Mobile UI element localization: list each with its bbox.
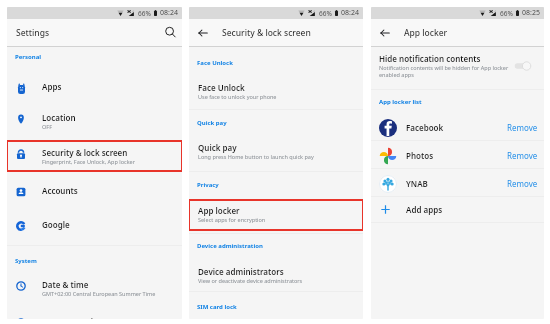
staticText: OFF [42,123,53,130]
button[interactable]: Search [164,26,177,39]
staticText: Google [42,219,70,230]
button[interactable]: Remove [501,118,544,137]
staticText: 08:24 [341,8,359,18]
staticText: Select apps for encryption [198,216,266,223]
button[interactable]: Back [197,27,209,39]
staticText: Accounts [42,185,78,196]
staticText: Add apps [406,204,443,215]
staticText: Hide notification contents [379,53,481,64]
staticText: Privacy [197,181,219,189]
staticText: Remove [507,178,538,189]
staticText: Face Unlock [198,82,245,93]
staticText: Quick pay [198,142,237,153]
staticText: Apps [42,81,62,92]
staticText: Location [42,112,76,123]
button[interactable]: Date & time [7,279,182,305]
button[interactable]: Security & lock screen [7,147,182,173]
button[interactable]: App locker [198,205,363,223]
staticText: Language & input [42,316,112,319]
staticText: 08:24 [160,8,178,18]
staticText: GMT+02:00 Central European Summer Time [42,290,156,297]
button[interactable]: Location [7,112,182,138]
staticText: Use face to unlock your phone [198,93,277,100]
button[interactable]: Google [7,219,182,239]
button[interactable]: Language & input [7,316,182,319]
staticText: View or deactivate device administrators [198,277,303,284]
staticText: Remove [507,150,538,161]
button[interactable]: Facebook [371,115,544,140]
staticText: Long press Home button to launch quick p… [198,153,314,160]
staticText: Security & lock screen [42,147,128,158]
button[interactable]: Apps [7,81,182,101]
staticText: SIM card lock [197,303,237,311]
staticText: 66% [500,9,513,18]
staticText: App locker list [379,98,422,106]
staticText: Face Unlock [197,59,233,67]
staticText: App locker [198,205,240,216]
staticText: 66% [138,9,151,18]
staticText: 08:25 [522,8,540,18]
other: Hide notification contents toggle [514,61,532,71]
button[interactable]: Add apps [371,198,544,221]
staticText: Device administrators [198,266,284,277]
staticText: Photos [406,150,434,161]
button[interactable]: Face Unlock [198,82,363,100]
staticText: Settings [16,27,50,39]
button[interactable]: Device administrators [198,266,363,284]
staticText: Device administration [197,242,263,250]
staticText: Personal [15,53,42,61]
button[interactable]: Photos [371,143,544,168]
button[interactable]: Accounts [7,185,182,205]
staticText: Date & time [42,279,89,290]
button[interactable]: Quick pay [198,142,363,160]
staticText: Fingerprint, Face Unlock, App locker [42,158,135,165]
staticText: Security & lock screen [222,27,311,39]
staticText: Quick pay [197,119,227,127]
staticText: Notification contents will be hidden for… [379,64,509,78]
button[interactable]: Remove [501,174,544,193]
staticText: Facebook [406,122,444,133]
button[interactable]: Remove [501,146,544,165]
staticText: Remove [507,122,538,133]
button[interactable]: Hide notification contents [371,51,544,86]
staticText: System [15,257,37,265]
button[interactable]: Back [379,27,391,39]
staticText: YNAB [406,178,428,189]
staticText: 66% [319,9,332,18]
button[interactable]: YNAB [371,171,544,196]
staticText: App locker [404,27,448,39]
